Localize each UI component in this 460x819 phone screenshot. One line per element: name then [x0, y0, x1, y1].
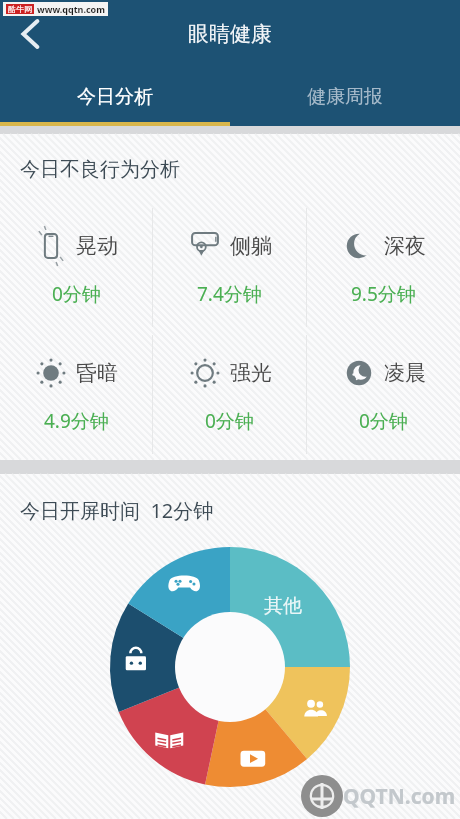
- button[interactable]: Back: [4, 10, 52, 58]
- button[interactable]: 晃动: [0, 204, 152, 331]
- button[interactable]: 其他: [264, 594, 302, 618]
- staticText: 侧躺: [230, 233, 272, 259]
- staticText: 0分钟: [205, 408, 254, 434]
- staticText: 凌晨: [384, 360, 426, 386]
- button[interactable]: 今日分析: [0, 68, 230, 126]
- staticText: 今日不良行为分析: [20, 157, 180, 182]
- staticText: 深夜: [384, 233, 426, 259]
- staticText: 强光: [230, 360, 272, 386]
- button[interactable]: 深夜: [307, 204, 460, 331]
- staticText: 健康周报: [307, 85, 383, 109]
- button[interactable]: 侧躺: [153, 204, 306, 331]
- staticText: 9.5分钟: [351, 281, 416, 307]
- staticText: www.qqtn.com: [37, 3, 105, 15]
- button[interactable]: 健康周报: [230, 68, 460, 126]
- staticText: 眼睛健康: [188, 21, 272, 47]
- button[interactable]: 昏暗: [0, 331, 152, 458]
- button[interactable]: 凌晨: [307, 331, 460, 458]
- staticText: 7.4分钟: [197, 281, 262, 307]
- staticText: 今日分析: [77, 85, 153, 109]
- staticText: 4.9分钟: [44, 408, 109, 434]
- staticText: 今日开屏时间 12分钟: [20, 497, 214, 524]
- button[interactable]: 强光: [153, 331, 306, 458]
- staticText: 0分钟: [359, 408, 408, 434]
- staticText: 昏暗: [76, 360, 118, 386]
- staticText: QQTN.com: [343, 782, 456, 811]
- staticText: 晃动: [76, 233, 118, 259]
- staticText: 0分钟: [52, 281, 101, 307]
- staticText: 酷牛网: [8, 4, 32, 14]
